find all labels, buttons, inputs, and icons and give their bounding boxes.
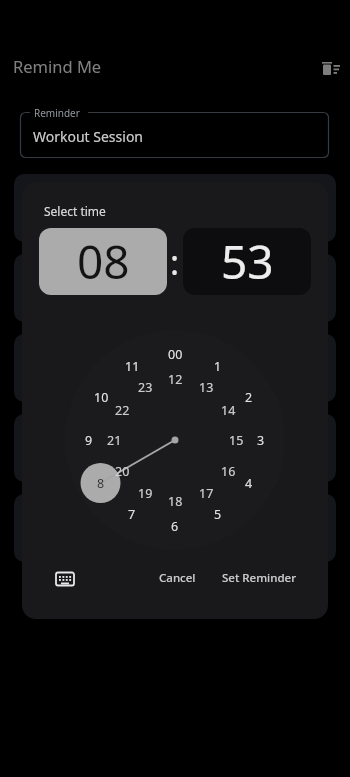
staticText: 5 <box>214 506 222 523</box>
button[interactable]: 2 <box>235 387 263 407</box>
staticText: 8 <box>97 475 105 492</box>
button[interactable]: 3 <box>247 430 275 450</box>
button[interactable]: 6 <box>161 516 189 536</box>
staticText: Remind Me <box>13 55 102 75</box>
button[interactable]: 1 <box>204 356 232 376</box>
button[interactable] <box>318 57 344 79</box>
button[interactable]: 8 <box>87 473 115 493</box>
staticText: Cancel <box>159 570 196 586</box>
staticText: 21 <box>107 432 122 449</box>
staticText: 14 <box>221 402 236 419</box>
staticText: 3 <box>257 432 265 449</box>
staticText: 6 <box>171 518 179 535</box>
button[interactable]: 14 <box>214 400 242 420</box>
button[interactable]: 21 <box>100 430 128 450</box>
staticText: 12 <box>168 371 183 388</box>
staticText: 08 <box>77 230 130 293</box>
button[interactable] <box>53 570 77 588</box>
staticText: 22 <box>115 402 130 419</box>
staticText: 4 <box>245 475 253 492</box>
staticText: 15 <box>229 432 244 449</box>
staticText: 18 <box>168 493 183 510</box>
staticText: 17 <box>199 485 214 502</box>
staticText: Select time <box>44 203 106 219</box>
button[interactable]: 18 <box>161 491 189 511</box>
staticText: 19 <box>138 485 153 502</box>
button[interactable]: Cancel <box>153 566 201 590</box>
button[interactable]: 4 <box>235 473 263 493</box>
button[interactable]: 15 <box>222 430 250 450</box>
button[interactable]: 22 <box>108 400 136 420</box>
staticText: 11 <box>125 358 140 375</box>
staticText: 7 <box>128 506 136 523</box>
staticText: 23 <box>138 379 153 396</box>
button[interactable]: 5 <box>204 504 232 524</box>
staticText: 20 <box>115 463 130 480</box>
staticText: 2 <box>245 389 253 406</box>
button[interactable]: 20 <box>108 461 136 481</box>
button[interactable]: 53 <box>183 228 311 295</box>
button[interactable]: 10 <box>87 387 115 407</box>
button[interactable]: 17 <box>192 483 220 503</box>
staticText: : <box>170 239 180 285</box>
staticText: Set Reminder <box>222 570 296 586</box>
button[interactable]: 19 <box>131 483 159 503</box>
staticText: Workout Session <box>33 127 144 146</box>
staticText: 10 <box>94 389 109 406</box>
button[interactable]: 9 <box>75 430 103 450</box>
staticText: 1 <box>214 358 222 375</box>
staticText: 13 <box>199 379 214 396</box>
button[interactable]: 00 <box>161 344 189 364</box>
staticText: Reminder <box>34 106 80 120</box>
button[interactable]: 16 <box>214 461 242 481</box>
button[interactable]: 23 <box>131 377 159 397</box>
button[interactable]: 7 <box>118 504 146 524</box>
staticText: 9 <box>85 432 93 449</box>
button[interactable]: 08 <box>39 228 167 295</box>
staticText: 00 <box>168 346 183 363</box>
button[interactable]: 12 <box>161 369 189 389</box>
staticText: 16 <box>221 463 236 480</box>
button[interactable]: Set Reminder <box>217 566 301 590</box>
staticText: 53 <box>221 230 274 293</box>
button[interactable]: Reminder <box>20 112 329 158</box>
button[interactable]: 13 <box>192 377 220 397</box>
button[interactable]: 11 <box>118 356 146 376</box>
